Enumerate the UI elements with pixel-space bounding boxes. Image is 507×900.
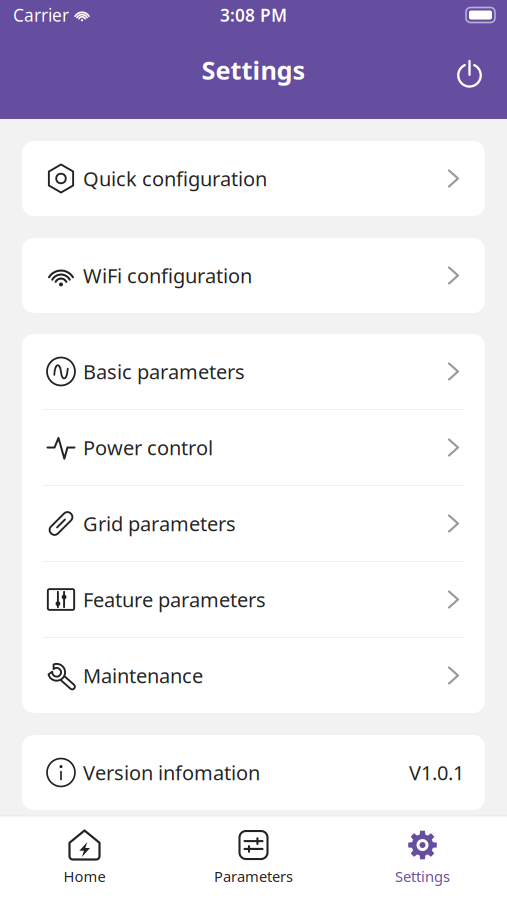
button[interactable]: Feature parameters	[22, 562, 485, 637]
staticText: Maintenance	[83, 662, 203, 689]
staticText: Basic parameters	[83, 358, 245, 385]
staticText: Carrier	[13, 3, 69, 26]
button[interactable]: Maintenance	[22, 638, 485, 713]
staticText: Parameters	[214, 866, 293, 886]
staticText: WiFi configuration	[83, 262, 252, 289]
staticText: Grid parameters	[83, 510, 236, 537]
button[interactable]: Settings	[338, 830, 507, 886]
button[interactable]: Version infomation	[22, 735, 485, 810]
button[interactable]: Basic parameters	[22, 334, 485, 409]
button[interactable]: Grid parameters	[22, 486, 485, 561]
button[interactable]: Power control	[22, 410, 485, 485]
button[interactable]: Parameters	[169, 830, 338, 886]
staticText: Home	[63, 866, 105, 886]
staticText: Feature parameters	[83, 586, 266, 613]
staticText: Version infomation	[83, 759, 260, 786]
button[interactable]: Quick configuration	[22, 141, 485, 216]
button[interactable]: WiFi configuration	[22, 238, 485, 313]
button[interactable]: Home	[0, 830, 169, 886]
staticText: 3:08 PM	[220, 3, 287, 26]
button[interactable]: Power	[448, 22, 491, 96]
staticText: V1.0.1	[409, 759, 464, 786]
staticText: Quick configuration	[83, 165, 267, 192]
staticText: Settings	[201, 53, 305, 87]
staticText: Settings	[395, 866, 450, 886]
staticText: Power control	[83, 434, 213, 461]
